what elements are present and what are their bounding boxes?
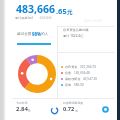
staticText: 自有资金认购份额 — [63, 28, 89, 32]
staticText: 元 — [75, 109, 78, 113]
staticText: 自有资金 — [65, 65, 78, 69]
staticText: 七日年化 — [39, 16, 52, 20]
button[interactable]: 其他 — [61, 82, 115, 88]
staticText: 42,547.30 — [83, 77, 98, 81]
staticText: 0.72 — [63, 105, 75, 113]
button[interactable]: 保险理赔金 — [61, 76, 115, 82]
staticText: 98% — [32, 31, 41, 37]
staticText: 其他 — [65, 83, 72, 87]
staticText: 累计 1022.4亿 — [63, 34, 84, 38]
staticText: 元 — [67, 9, 73, 16]
staticText: 145,656.48 — [74, 71, 90, 75]
button[interactable]: 自有资金 — [61, 64, 115, 70]
staticText: 保险理赔金 — [65, 77, 81, 81]
staticText: 267,266.70 — [80, 65, 96, 69]
button[interactable]: 负债 — [61, 70, 115, 76]
staticText: .65 — [56, 6, 67, 16]
staticText: 的人 — [41, 32, 49, 37]
button[interactable]: Refresh — [50, 106, 59, 115]
staticText: 七日年化 — [16, 101, 28, 105]
staticText: 超过全国 — [17, 32, 32, 37]
staticText: 累计收益(元) — [15, 16, 33, 20]
staticText: 483,666 — [16, 2, 56, 16]
staticText: 580.00 — [74, 83, 84, 87]
staticText: 负债 — [65, 71, 72, 75]
button[interactable]: Details — [101, 105, 110, 114]
staticText: 更新于 15:00 — [84, 19, 102, 23]
staticText: 2.84 — [16, 105, 28, 113]
staticText: % — [28, 109, 31, 113]
staticText: 好券商优惠息量 — [63, 101, 84, 105]
